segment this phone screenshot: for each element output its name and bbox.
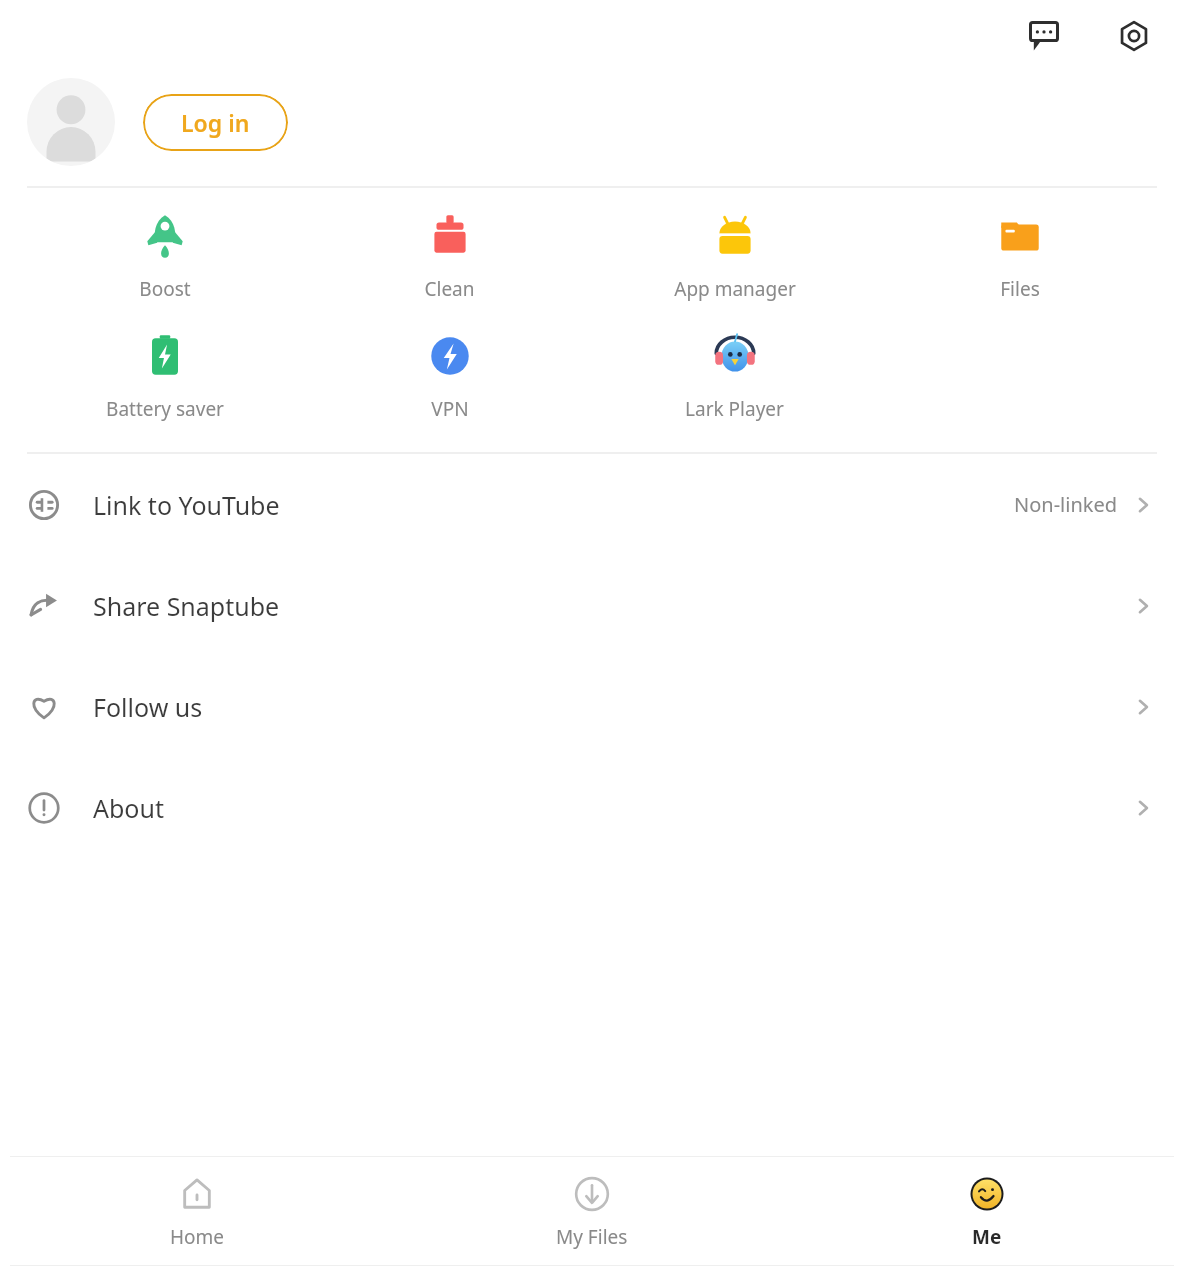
button[interactable]: Log in — [143, 94, 288, 151]
staticText: Lark Player — [685, 396, 784, 422]
button[interactable]: Link to YouTube — [0, 454, 1184, 555]
button[interactable]: Follow us — [0, 656, 1184, 757]
staticText: VPN — [431, 396, 469, 422]
staticText: Link to YouTube — [93, 488, 280, 522]
button[interactable]: Settings — [1110, 12, 1158, 60]
staticText: Share Snaptube — [93, 589, 280, 623]
button[interactable]: Boost — [22, 210, 307, 302]
staticText: Non-linked — [1014, 491, 1118, 518]
staticText: Battery saver — [106, 396, 224, 422]
staticText: Log in — [181, 107, 250, 138]
staticText: Home — [170, 1224, 225, 1250]
button[interactable]: Feedback — [1020, 12, 1068, 60]
staticText: About — [93, 791, 164, 825]
staticText: Files — [1000, 276, 1040, 302]
staticText: My Files — [556, 1224, 628, 1250]
button[interactable]: Lark Player — [592, 330, 877, 422]
button[interactable]: Me — [789, 1157, 1184, 1265]
button[interactable]: Home — [0, 1157, 394, 1265]
button[interactable]: Clean — [307, 210, 592, 302]
button[interactable]: About — [0, 757, 1184, 858]
staticText: Boost — [139, 276, 191, 302]
staticText: Clean — [424, 276, 475, 302]
staticText: App manager — [674, 276, 796, 302]
button[interactable]: Files — [877, 210, 1162, 302]
button[interactable]: VPN — [307, 330, 592, 422]
button[interactable]: My Files — [394, 1157, 789, 1265]
button[interactable]: App manager — [592, 210, 877, 302]
button[interactable]: Share Snaptube — [0, 555, 1184, 656]
button[interactable]: Avatar — [27, 78, 115, 166]
staticText: Me — [972, 1224, 1002, 1250]
button[interactable]: Battery saver — [22, 330, 307, 422]
staticText: Follow us — [93, 690, 203, 724]
